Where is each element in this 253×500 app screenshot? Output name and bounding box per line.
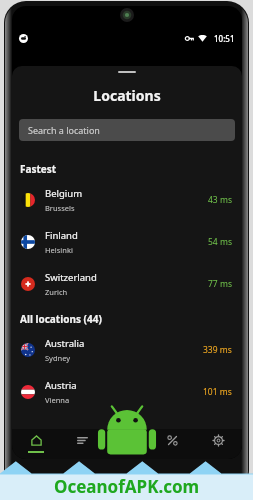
button[interactable]: Austria [12, 371, 242, 413]
staticText: 43 ms [208, 194, 232, 206]
staticText: Fastest [20, 162, 57, 176]
staticText: Vienna [45, 395, 70, 405]
staticText: 339 ms [203, 344, 232, 356]
staticText: Australia [45, 337, 85, 350]
button[interactable]: Australia [12, 329, 242, 371]
staticText: 54 ms [208, 236, 232, 248]
staticText: All locations (44) [20, 312, 102, 326]
button[interactable]: Servers [61, 429, 103, 459]
staticText: Brussels [45, 203, 75, 213]
staticText: 101 ms [203, 386, 232, 398]
staticText: Belgium [45, 187, 83, 200]
staticText: 77 ms [208, 278, 232, 290]
staticText: Search a location [28, 124, 100, 136]
staticText: Austria [45, 379, 77, 392]
button[interactable]: Finland [12, 221, 242, 263]
button[interactable]: Statistics [151, 429, 193, 459]
staticText: Switzerland [45, 271, 97, 284]
staticText: Sydney [45, 353, 71, 363]
button[interactable]: Search a location [19, 119, 235, 141]
button[interactable]: Belgium [12, 179, 242, 221]
button[interactable]: Map [106, 429, 148, 459]
staticText: Locations [12, 86, 242, 105]
button[interactable]: Switzerland [12, 263, 242, 305]
button[interactable]: Settings [197, 429, 239, 459]
staticText: 10:51 [214, 33, 235, 44]
staticText: Finland [45, 229, 78, 242]
staticText: OceanofAPK.com [54, 475, 200, 498]
staticText: Zurich [45, 287, 68, 297]
staticText: Helsinki [45, 245, 73, 255]
button[interactable]: Home [15, 429, 57, 459]
